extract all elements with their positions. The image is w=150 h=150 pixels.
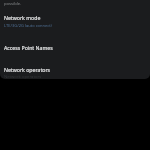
button[interactable]: Network mode (0, 7, 150, 28)
button[interactable]: Network operators (0, 51, 150, 79)
staticText: Network operators (4, 66, 51, 73)
staticText: LTE/3G/2G (auto connect) (4, 23, 52, 28)
staticText: possible. (4, 1, 22, 7)
staticText: Access Point Names (4, 44, 53, 51)
button[interactable]: Access Point Names (0, 28, 150, 51)
staticText: Network mode (4, 14, 41, 21)
staticText: Network operators (4, 74, 42, 79)
